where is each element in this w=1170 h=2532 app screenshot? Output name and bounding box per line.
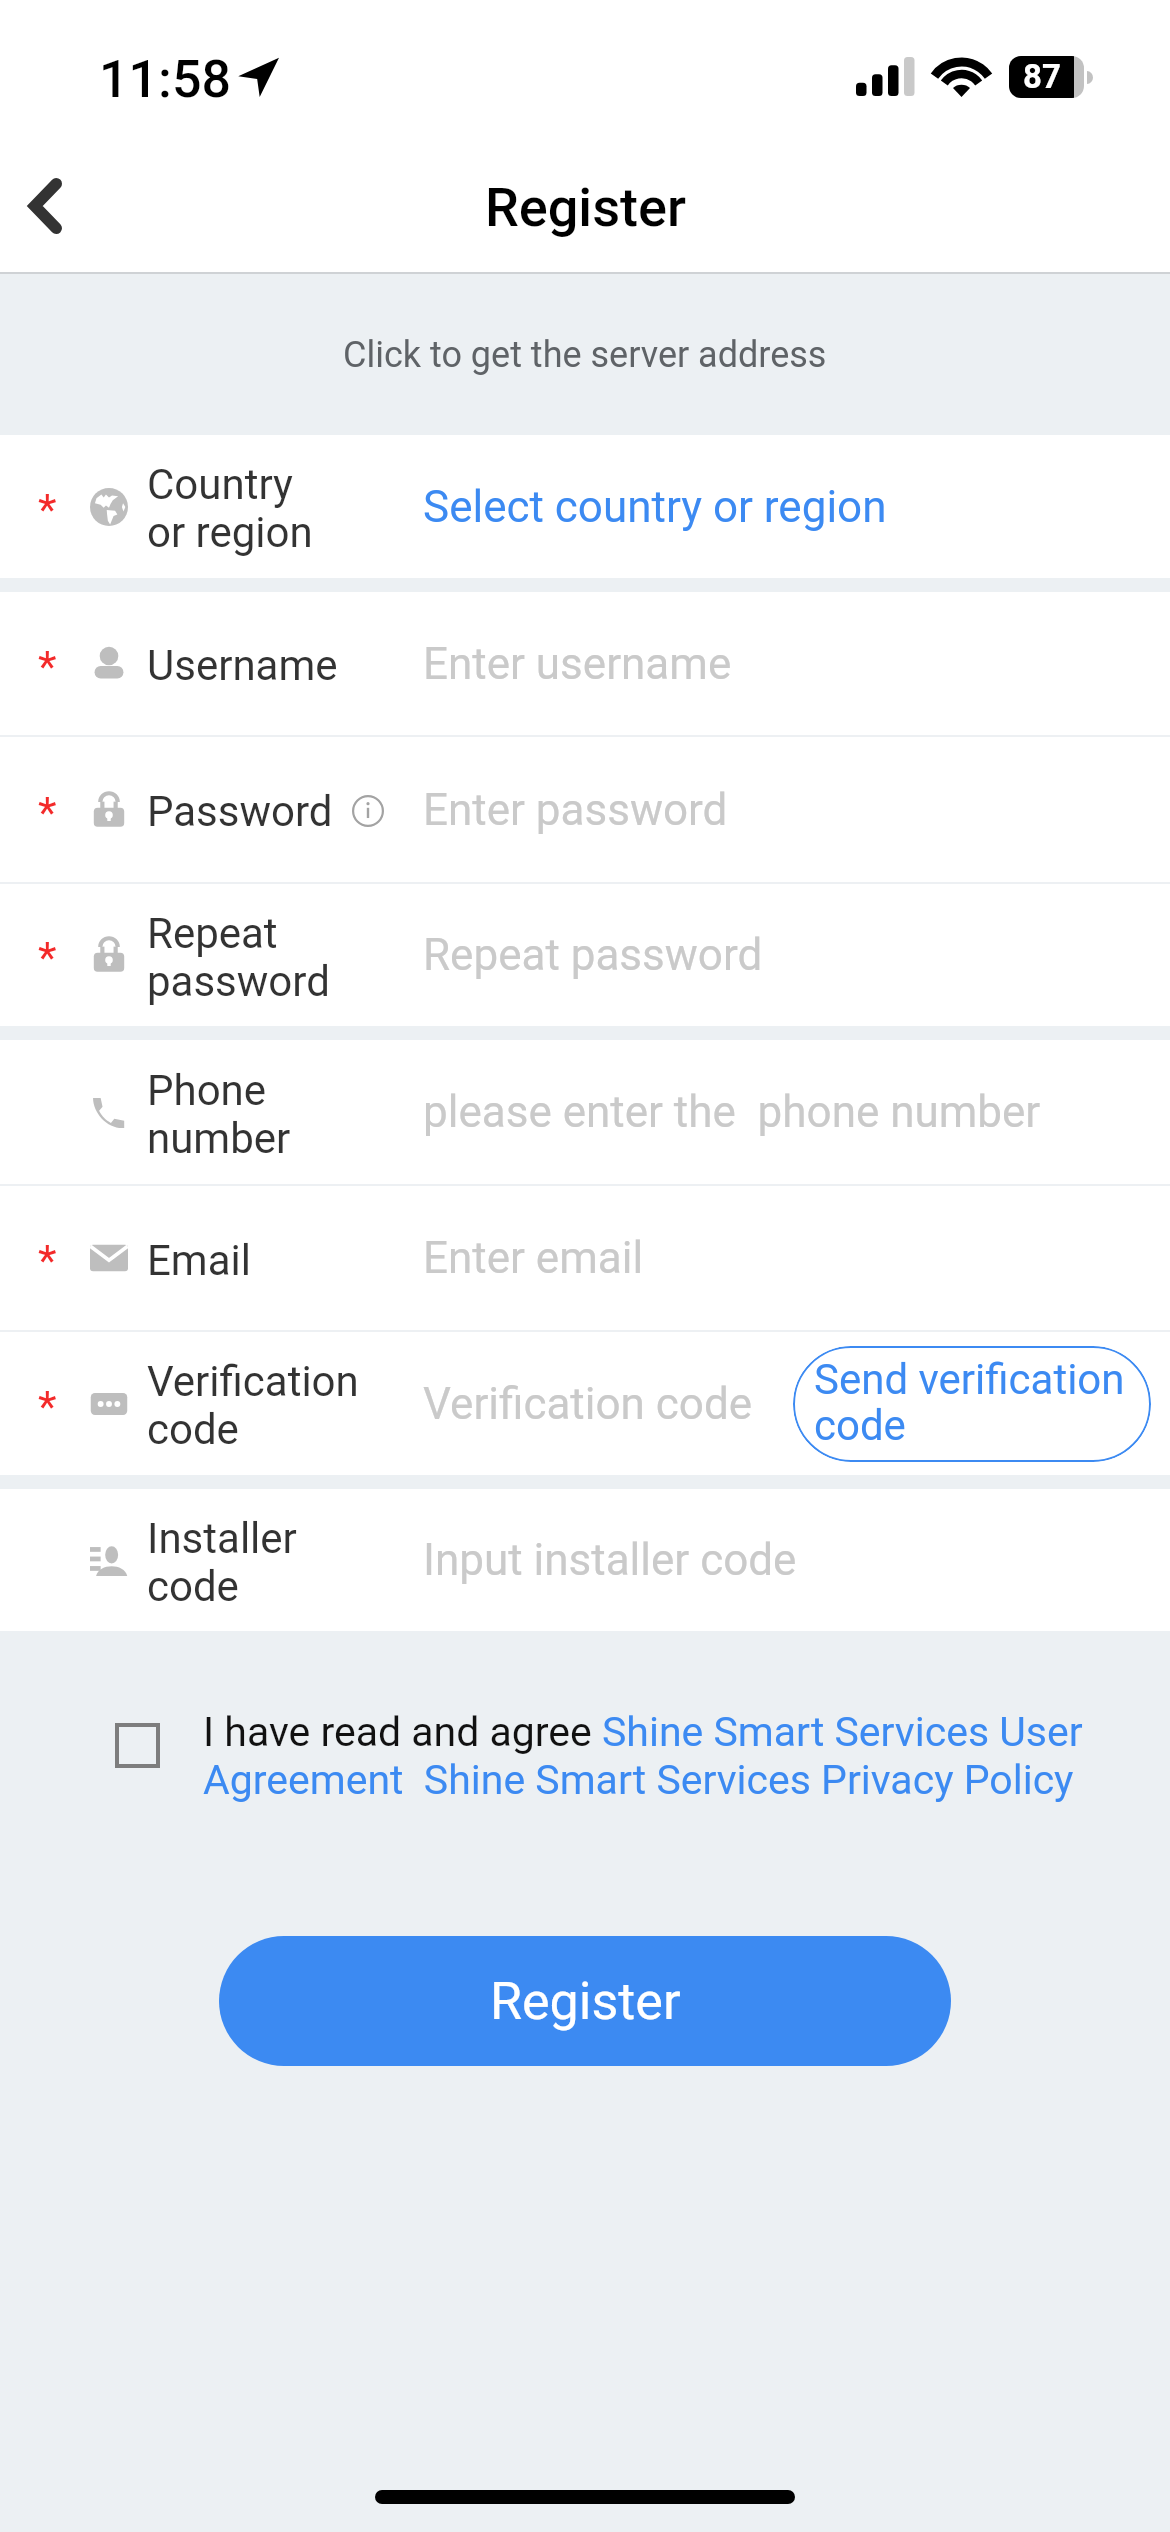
button[interactable]: *: [0, 884, 1170, 1026]
button[interactable]: Password requirements info: [352, 795, 384, 827]
staticText: Enter email: [423, 1232, 644, 1284]
staticText: Installer code: [147, 1514, 297, 1611]
staticText: Country or region: [147, 460, 313, 557]
button[interactable]: Agree to terms checkbox: [115, 1723, 160, 1768]
staticText: Repeat password: [423, 929, 763, 981]
button[interactable]: Select country or region: [423, 435, 887, 578]
button[interactable]: Back: [0, 150, 118, 274]
staticText: *: [38, 787, 57, 837]
staticText: *: [38, 1235, 57, 1285]
staticText: Click to get the server address: [343, 334, 827, 376]
staticText: Password: [147, 787, 333, 836]
button[interactable]: *: [0, 1332, 1170, 1475]
staticText: Select country or region: [423, 481, 887, 533]
staticText: Register: [490, 1971, 681, 2032]
button[interactable]: *: [0, 1186, 1170, 1330]
button[interactable]: *: [0, 737, 1170, 882]
button[interactable]: Send verification code: [793, 1346, 1151, 1462]
staticText: 87: [1023, 57, 1061, 96]
staticText: Email: [147, 1236, 251, 1285]
staticText: *: [38, 484, 57, 534]
staticText: Username: [147, 641, 338, 690]
staticText: Send verification code: [814, 1355, 1125, 1451]
button[interactable]: Installer code: [0, 1489, 1170, 1631]
staticText: *: [38, 932, 57, 982]
staticText: please enter the phone number: [423, 1086, 1041, 1138]
staticText: Repeat password: [147, 909, 330, 1006]
button[interactable]: Phone number: [0, 1040, 1170, 1184]
staticText: Register: [485, 176, 686, 239]
staticText: *: [38, 641, 57, 691]
staticText: *: [38, 1381, 57, 1431]
button[interactable]: I have read and agree Shine Smart Servic…: [203, 1708, 1098, 1804]
staticText: Input installer code: [423, 1534, 797, 1586]
button[interactable]: Click to get the server address: [0, 274, 1170, 435]
staticText: Phone number: [147, 1066, 291, 1163]
staticText: Verification code: [147, 1357, 359, 1454]
button[interactable]: *: [0, 592, 1170, 735]
staticText: Enter password: [423, 784, 728, 836]
staticText: Verification code: [423, 1378, 753, 1430]
button[interactable]: *: [0, 435, 1170, 578]
staticText: Enter username: [423, 638, 732, 690]
button[interactable]: Register: [219, 1936, 951, 2066]
staticText: 11:58: [99, 49, 232, 110]
